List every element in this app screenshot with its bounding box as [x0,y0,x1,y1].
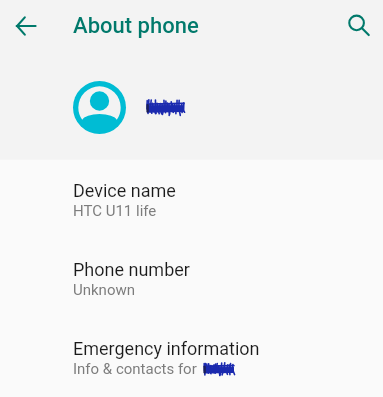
button[interactable]: Device name [0,160,383,239]
button[interactable]: Navigate up [0,0,52,51]
button[interactable]: Search [335,2,383,50]
staticText: About phone [73,13,199,39]
staticText: Device name [73,180,176,201]
staticText: Phone number [73,259,190,280]
staticText: HTC U11 life [73,202,157,220]
staticText: Emergency information [73,338,260,359]
button[interactable]: Phone number [0,239,383,318]
staticText: Info & contacts for [73,360,197,378]
button[interactable]: Emergency information [0,318,383,397]
staticText: Unknown [73,281,136,299]
button[interactable] [0,51,383,159]
